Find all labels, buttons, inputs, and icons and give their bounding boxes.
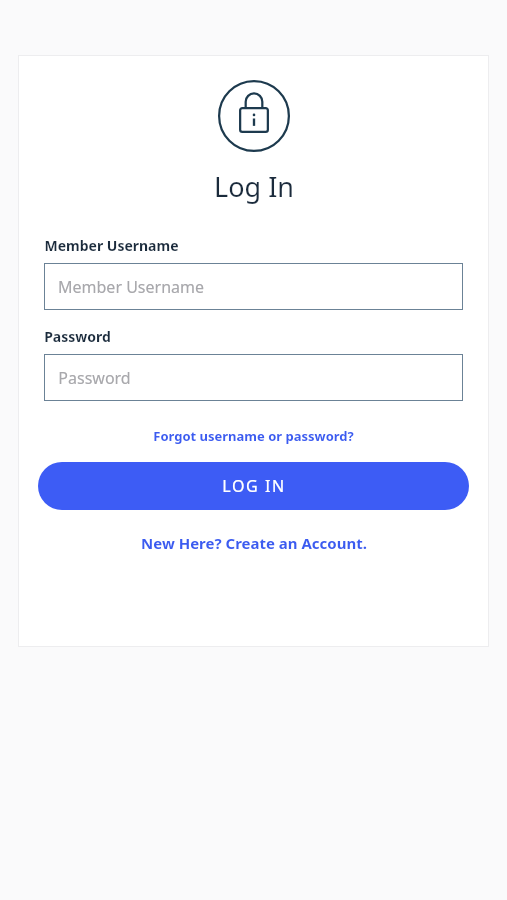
staticText: New Here? Create an Account. bbox=[141, 533, 367, 553]
button[interactable]: Forgot username or password? bbox=[145, 425, 362, 447]
other: Secure login bbox=[218, 80, 290, 152]
staticText: Password bbox=[58, 367, 131, 389]
staticText: Password bbox=[44, 327, 111, 346]
staticText: Forgot username or password? bbox=[153, 427, 354, 445]
button[interactable]: Password bbox=[44, 354, 463, 401]
staticText: Member Username bbox=[44, 236, 179, 255]
staticText: Log In bbox=[214, 168, 294, 205]
staticText: LOG IN bbox=[222, 475, 286, 497]
button[interactable]: LOG IN bbox=[38, 462, 469, 510]
button[interactable]: Member Username bbox=[44, 263, 463, 310]
button[interactable]: New Here? Create an Account. bbox=[133, 531, 375, 555]
staticText: Member Username bbox=[58, 276, 204, 298]
